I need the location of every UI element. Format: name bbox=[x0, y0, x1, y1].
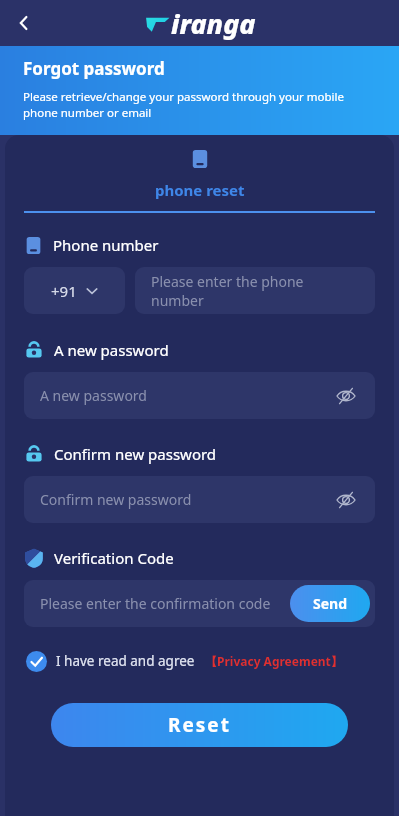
staticText: Verification Code bbox=[54, 548, 174, 568]
staticText: phone reset bbox=[155, 180, 245, 200]
staticText: I have read and agree bbox=[56, 652, 195, 670]
staticText: Confirm new password bbox=[54, 444, 217, 464]
staticText: A new password bbox=[54, 340, 169, 360]
staticText: Phone number bbox=[53, 235, 159, 255]
staticText: Send bbox=[313, 594, 348, 613]
button[interactable]: Please enter the phone number bbox=[135, 267, 375, 314]
button[interactable]: Send bbox=[290, 585, 370, 622]
staticText: Forgot password bbox=[23, 57, 165, 80]
staticText: Please enter the phone number bbox=[151, 272, 359, 310]
staticText: +91 bbox=[51, 281, 77, 301]
button[interactable]: 【Privacy Agreement】 bbox=[205, 653, 343, 669]
button[interactable]: A new password bbox=[24, 372, 375, 419]
button[interactable]: Back bbox=[6, 5, 42, 41]
staticText: Reset bbox=[168, 712, 231, 738]
staticText: Please enter the confirmation code bbox=[40, 594, 271, 613]
button[interactable]: +91 bbox=[24, 267, 125, 314]
button[interactable]: Toggle password visibility bbox=[333, 487, 359, 513]
button[interactable]: Reset bbox=[51, 703, 348, 747]
staticText: Please retrieve/change your password thr… bbox=[23, 89, 379, 120]
staticText: A new password bbox=[40, 386, 147, 405]
staticText: iranga bbox=[171, 5, 256, 42]
staticText: 【Privacy Agreement】 bbox=[205, 653, 343, 669]
button[interactable]: Confirm new password bbox=[24, 476, 375, 523]
button[interactable]: Toggle password visibility bbox=[333, 383, 359, 409]
button[interactable]: phone reset bbox=[5, 149, 394, 213]
button[interactable]: Please enter the confirmation code bbox=[24, 580, 375, 627]
staticText: Confirm new password bbox=[40, 490, 192, 509]
button[interactable]: Agree to privacy agreement bbox=[24, 649, 48, 673]
